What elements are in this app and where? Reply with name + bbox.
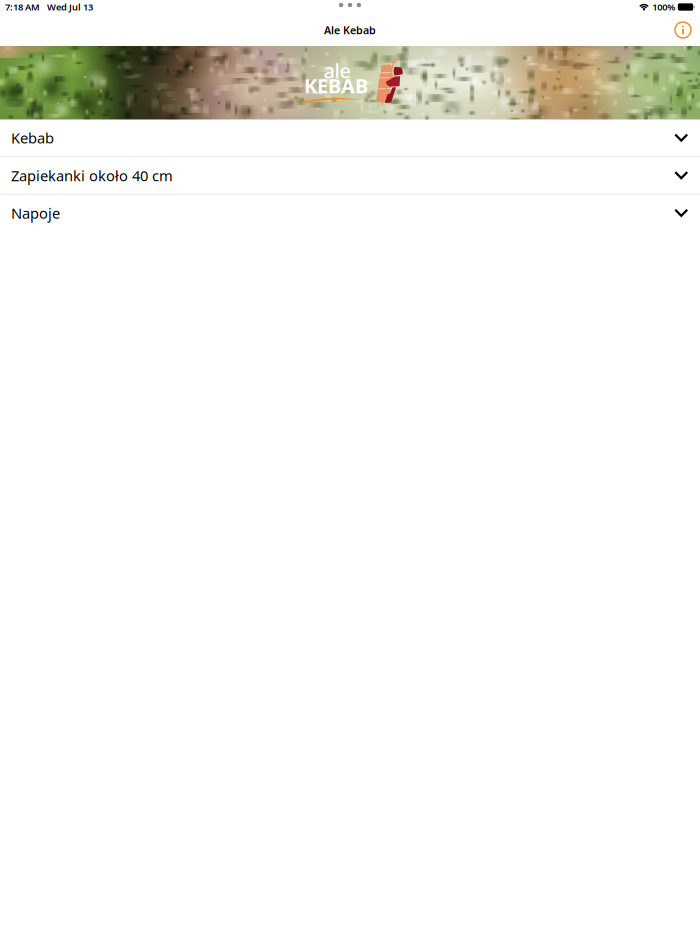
staticText: Zapiekanki około 40 cm xyxy=(11,166,173,185)
staticText: Napoje xyxy=(11,203,60,223)
button[interactable]: Napoje xyxy=(0,195,700,232)
staticText: 100% xyxy=(652,1,675,13)
button[interactable]: Zapiekanki około 40 cm xyxy=(0,157,700,195)
staticText: ale xyxy=(323,57,350,84)
button[interactable]: Kebab xyxy=(0,120,700,157)
staticText: 7:18 AM xyxy=(5,1,40,13)
button[interactable]: Info xyxy=(666,14,700,46)
staticText: Ale Kebab xyxy=(324,23,376,37)
staticText: Wed Jul 13 xyxy=(47,1,93,13)
staticText: KEBAB xyxy=(304,72,368,99)
staticText: Kebab xyxy=(11,128,54,148)
